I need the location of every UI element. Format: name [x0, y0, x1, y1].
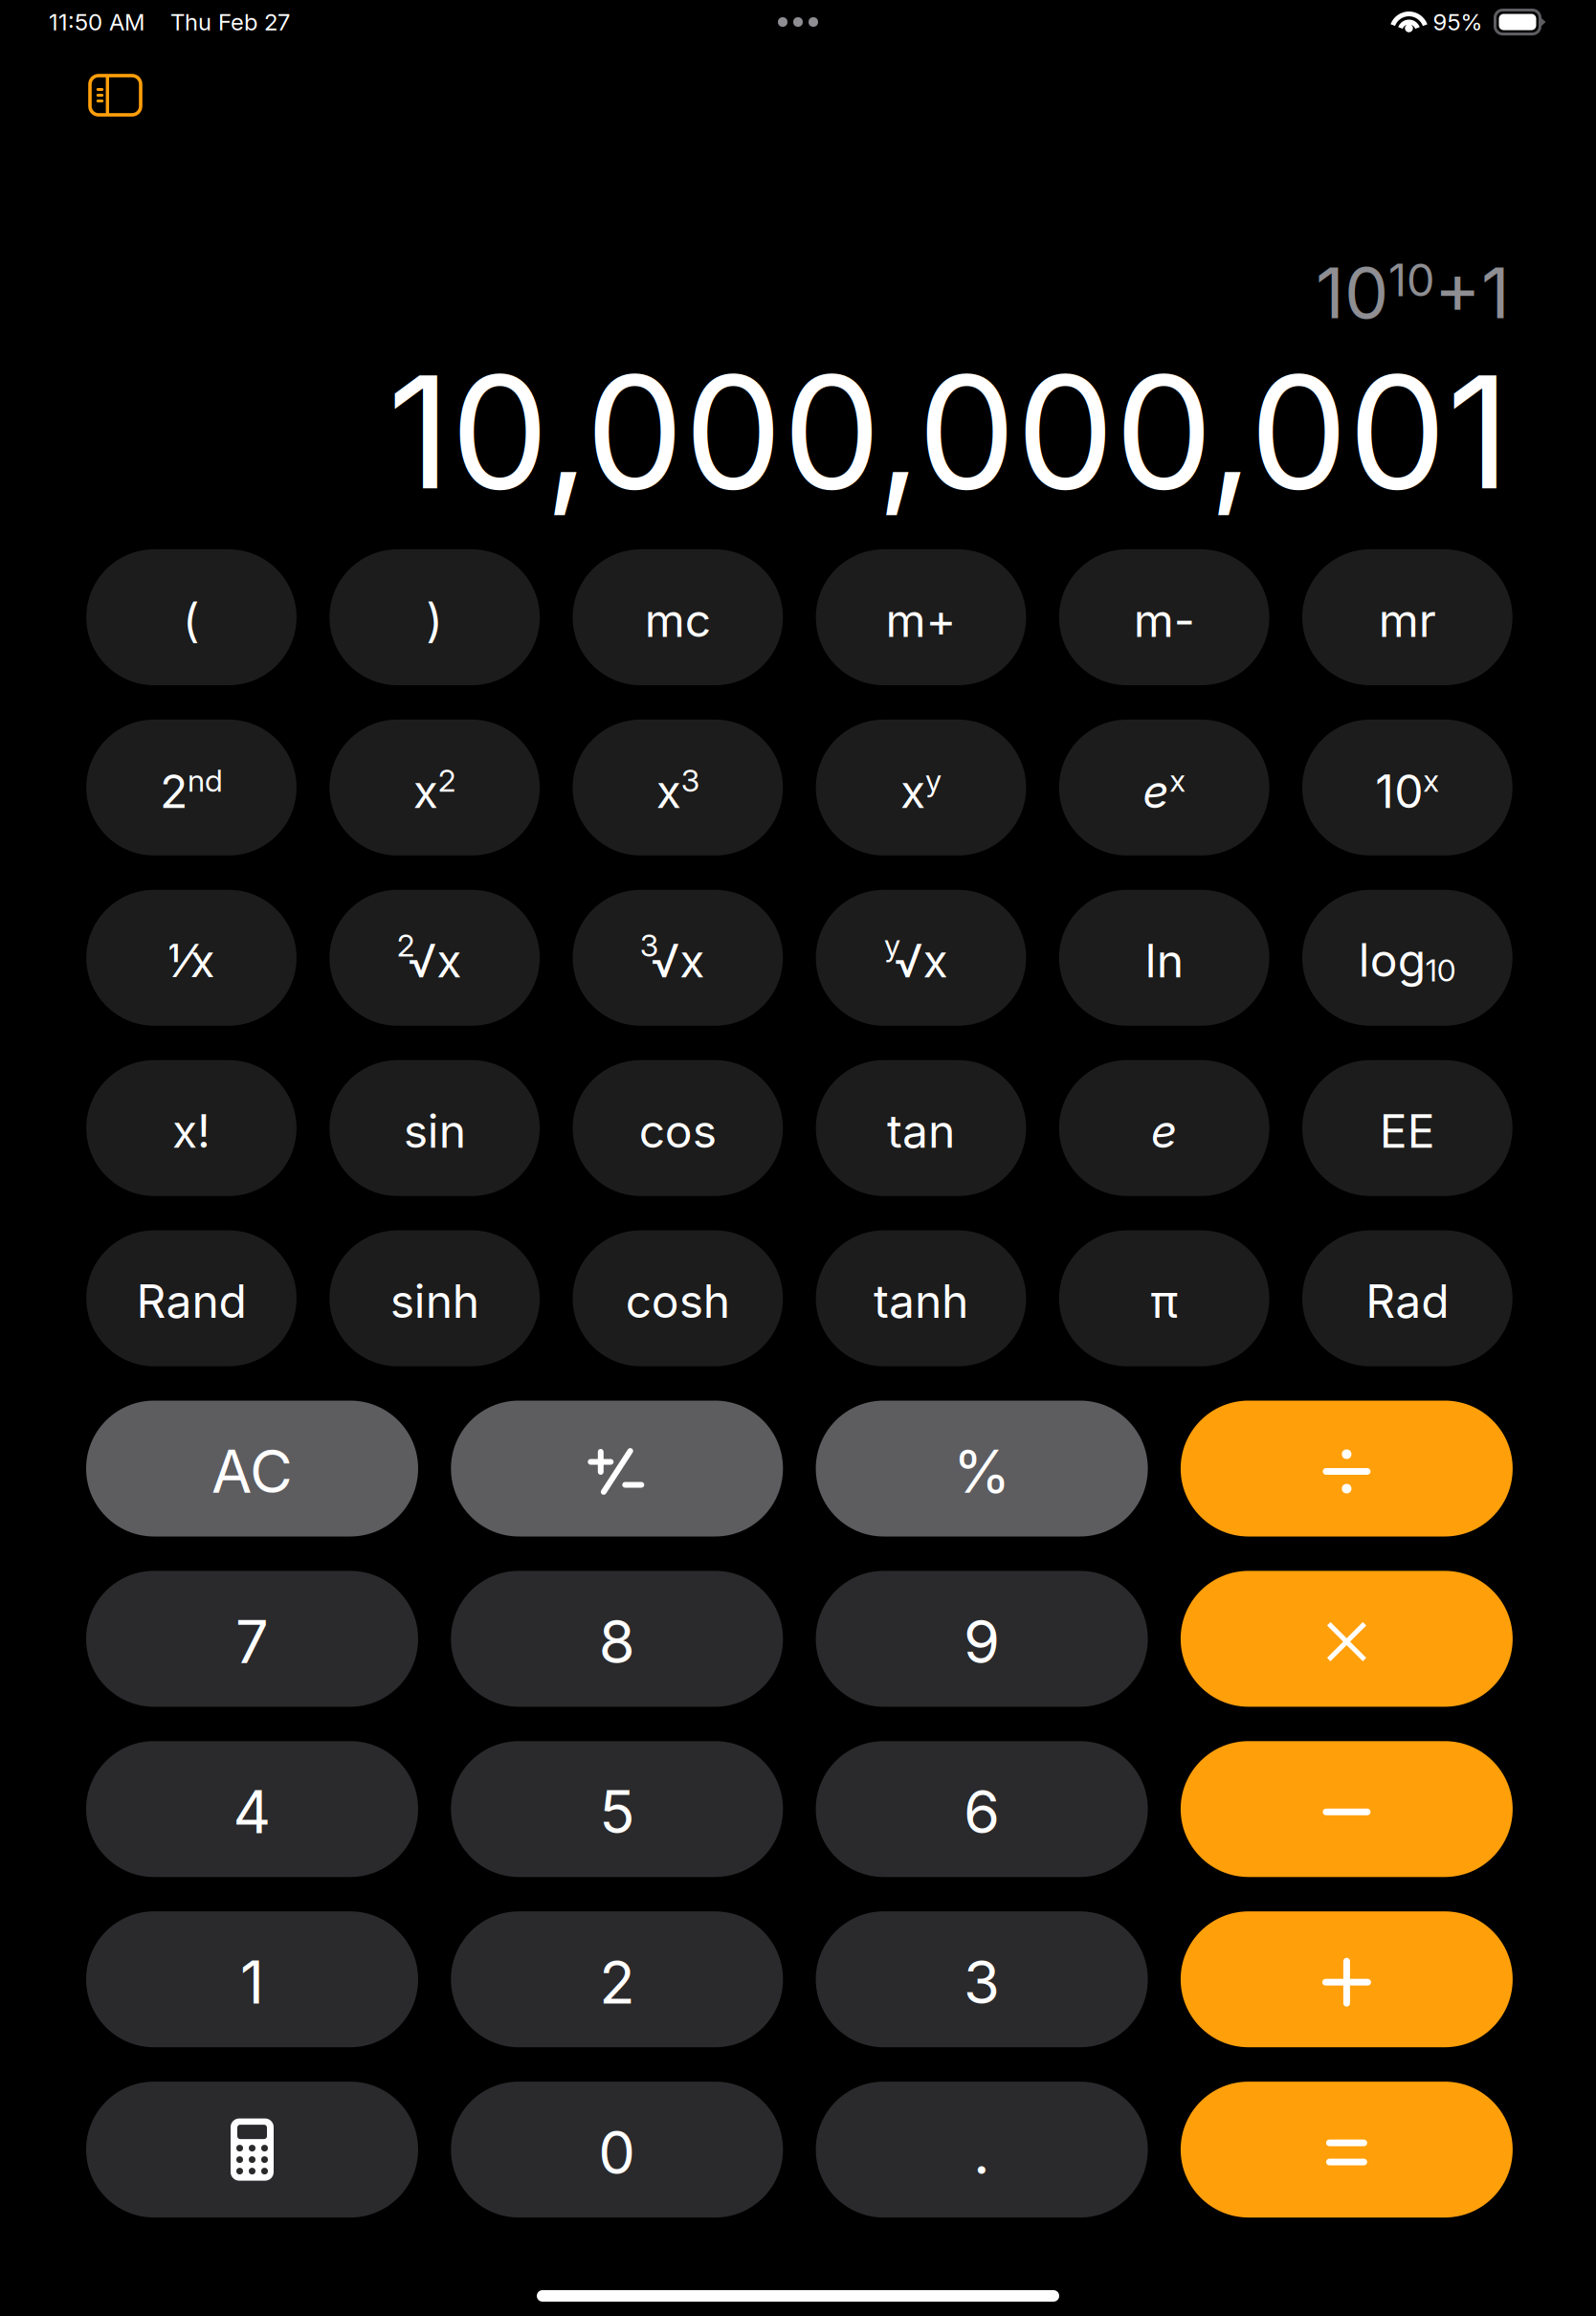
staticText: 1 — [240, 1947, 264, 2018]
staticText: 11:50 AM — [49, 8, 144, 36]
staticText: xy — [900, 762, 942, 818]
button[interactable]: 3 — [816, 1911, 1148, 2047]
button[interactable]: Basic Calculator — [86, 2082, 418, 2218]
staticText: log10 — [1359, 933, 1456, 988]
staticText: 2 — [397, 927, 415, 964]
staticText: sin — [403, 1103, 466, 1159]
button[interactable]: . — [816, 2082, 1148, 2218]
staticText: 5 — [599, 1776, 635, 1847]
button[interactable]: EE — [1302, 1060, 1512, 1196]
button[interactable]: ⅟x — [86, 890, 297, 1026]
button[interactable]: x2 — [330, 720, 540, 855]
staticText: 8 — [599, 1606, 635, 1677]
staticText: Thu Feb 27 — [170, 8, 290, 36]
staticText: x2 — [413, 762, 456, 818]
staticText: mc — [645, 592, 711, 648]
staticText: e — [1151, 1103, 1178, 1159]
staticText: y — [884, 927, 900, 964]
staticText: tan — [887, 1103, 955, 1159]
button[interactable]: Divide — [1181, 1401, 1513, 1537]
button[interactable]: 1 — [86, 1911, 418, 2047]
button[interactable]: 2 — [451, 1911, 783, 2047]
button[interactable]: 0 — [451, 2082, 783, 2218]
button[interactable]: sinh — [330, 1230, 540, 1366]
staticText: Rad — [1366, 1273, 1449, 1329]
staticText: cos — [639, 1103, 717, 1159]
staticText: mr — [1379, 592, 1436, 648]
button[interactable]: √x — [816, 890, 1026, 1026]
button[interactable]: cosh — [573, 1230, 783, 1366]
staticText: ) — [426, 592, 443, 648]
button[interactable]: mr — [1302, 549, 1512, 685]
staticText: √x — [651, 933, 705, 989]
button[interactable]: x! — [86, 1060, 297, 1196]
staticText: 1010+1 — [1316, 251, 1510, 334]
button[interactable]: Show Sidebar — [90, 76, 141, 115]
staticText: . — [973, 2117, 990, 2188]
button[interactable]: √x — [573, 890, 783, 1026]
staticText: sinh — [390, 1273, 479, 1329]
staticText: EE — [1380, 1103, 1435, 1159]
staticText: m- — [1134, 592, 1195, 648]
button[interactable]: ( — [86, 549, 297, 685]
button[interactable]: m+ — [816, 549, 1026, 685]
staticText: 2nd — [160, 762, 223, 818]
button[interactable]: mc — [573, 549, 783, 685]
button[interactable]: ) — [330, 549, 540, 685]
button[interactable]: 10x — [1302, 720, 1512, 855]
button[interactable]: 4 — [86, 1741, 418, 1877]
staticText: x! — [172, 1103, 211, 1159]
staticText: tanh — [874, 1273, 968, 1329]
staticText: ⅟x — [168, 933, 215, 989]
staticText: ex — [1143, 762, 1186, 818]
button[interactable]: Rad — [1302, 1230, 1512, 1366]
button[interactable]: 5 — [451, 1741, 783, 1877]
staticText: 3 — [964, 1947, 1000, 2018]
button[interactable]: xy — [816, 720, 1026, 855]
button[interactable]: Equals — [1181, 2082, 1513, 2218]
button[interactable]: √x — [330, 890, 540, 1026]
button[interactable]: π — [1059, 1230, 1269, 1366]
staticText: 95% — [1433, 8, 1483, 36]
button[interactable]: Plus Minus — [451, 1401, 783, 1537]
button[interactable]: AC — [86, 1401, 418, 1537]
staticText: 7 — [235, 1606, 269, 1677]
button[interactable]: m- — [1059, 549, 1269, 685]
button[interactable]: x3 — [573, 720, 783, 855]
button[interactable]: ln — [1059, 890, 1269, 1026]
staticText: ln — [1145, 933, 1183, 989]
button[interactable]: 2nd — [86, 720, 297, 855]
button[interactable]: e — [1059, 1060, 1269, 1196]
staticText: 10,000,000,001 — [388, 337, 1510, 526]
button[interactable]: % — [816, 1401, 1148, 1537]
staticText: 6 — [964, 1776, 1000, 1847]
staticText: √x — [408, 933, 461, 989]
staticText: 4 — [233, 1776, 271, 1847]
button[interactable]: cos — [573, 1060, 783, 1196]
button[interactable]: tanh — [816, 1230, 1026, 1366]
staticText: m+ — [886, 592, 956, 648]
staticText: π — [1150, 1273, 1178, 1329]
button[interactable]: Subtract — [1181, 1741, 1513, 1877]
button[interactable]: sin — [330, 1060, 540, 1196]
staticText: 10x — [1375, 762, 1439, 818]
button[interactable]: Multiply — [1181, 1571, 1513, 1707]
staticText: Rand — [136, 1273, 246, 1329]
staticText: √x — [894, 933, 948, 989]
staticText: 9 — [964, 1606, 1000, 1677]
button[interactable]: 6 — [816, 1741, 1148, 1877]
staticText: AC — [211, 1436, 293, 1507]
button[interactable]: log10 — [1302, 890, 1512, 1026]
button[interactable]: 7 — [86, 1571, 418, 1707]
button[interactable]: tan — [816, 1060, 1026, 1196]
staticText: 0 — [598, 2117, 636, 2188]
button[interactable]: 8 — [451, 1571, 783, 1707]
button[interactable]: 9 — [816, 1571, 1148, 1707]
staticText: ( — [183, 592, 200, 648]
staticText: cosh — [626, 1273, 730, 1329]
button[interactable]: Add — [1181, 1911, 1513, 2047]
staticText: 2 — [599, 1947, 635, 2018]
button[interactable]: ex — [1059, 720, 1269, 855]
button[interactable]: Rand — [86, 1230, 297, 1366]
staticText: % — [953, 1436, 1011, 1507]
